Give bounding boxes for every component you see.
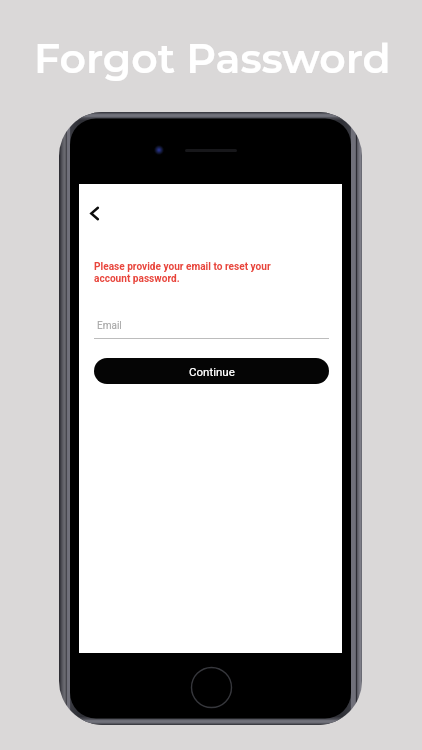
button[interactable]: Back (80, 199, 108, 227)
staticText: Forgot Password (34, 33, 391, 83)
staticText: Continue (189, 365, 235, 378)
staticText: Please provide your email to reset your … (94, 261, 276, 285)
button[interactable]: Continue (94, 358, 329, 384)
staticText: Email (97, 320, 122, 332)
